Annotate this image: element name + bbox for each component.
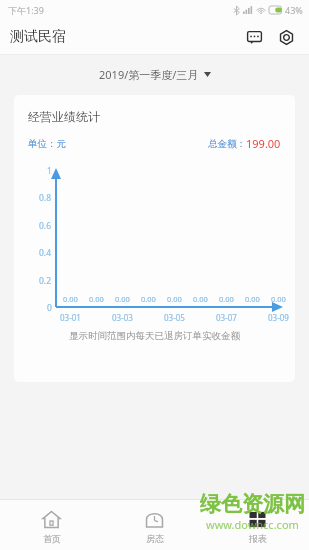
button[interactable]: Messages <box>241 24 267 50</box>
staticText: 03-01 <box>60 312 81 323</box>
staticText: 0.00 <box>245 294 260 304</box>
staticText: 下午1:39 <box>8 4 44 16</box>
staticText: 0.00 <box>141 294 156 304</box>
staticText: 03-05 <box>164 312 185 323</box>
staticText: 0.4 <box>39 247 52 259</box>
staticText: 0.00 <box>219 294 234 304</box>
staticText: 199.00 <box>246 136 281 151</box>
staticText: 2019/第一季度/三月 <box>99 67 199 82</box>
staticText: 1 <box>47 165 52 177</box>
button[interactable]: 报表 <box>206 500 309 550</box>
staticText: 0.00 <box>271 294 286 304</box>
staticText: 0.00 <box>167 294 182 304</box>
staticText: 0.2 <box>39 275 52 287</box>
staticText: 0.00 <box>89 294 104 304</box>
staticText: 03-03 <box>112 312 133 323</box>
staticText: 显示时间范围内每天已退房订单实收金额 <box>14 330 295 342</box>
staticText: 总金额： <box>208 138 246 150</box>
staticText: www.downcc.com <box>206 517 299 532</box>
staticText: 03-09 <box>268 312 289 323</box>
button[interactable]: 2019/第一季度/三月 <box>93 64 217 85</box>
button[interactable]: 首页 <box>0 500 103 550</box>
staticText: 0.00 <box>193 294 208 304</box>
staticText: 0 <box>47 302 52 314</box>
staticText: 0.6 <box>39 220 52 232</box>
staticText: 0.00 <box>115 294 130 304</box>
button[interactable]: 房态 <box>103 500 206 550</box>
staticText: 0.00 <box>63 294 78 304</box>
staticText: 绿色资源网 <box>200 491 305 517</box>
staticText: 经营业绩统计 <box>28 109 100 124</box>
staticText: 房态 <box>146 533 164 544</box>
staticText: 首页 <box>43 533 61 544</box>
staticText: 单位：元 <box>28 138 66 150</box>
staticText: 0.8 <box>39 192 52 204</box>
staticText: 报表 <box>249 533 267 544</box>
staticText: 43% <box>285 4 303 16</box>
staticText: 测试民宿 <box>10 28 66 46</box>
staticText: 03-07 <box>216 312 237 323</box>
button[interactable]: Settings <box>273 24 299 50</box>
